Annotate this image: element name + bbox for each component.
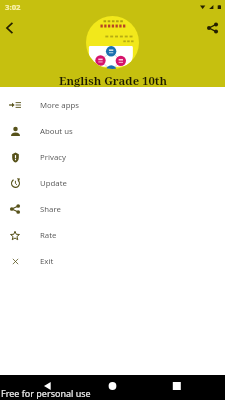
staticText: About us <box>40 126 73 137</box>
staticText: Share <box>40 204 61 215</box>
staticText: More apps <box>40 100 79 111</box>
button[interactable]: More apps <box>0 92 225 118</box>
button[interactable]: Privacy <box>0 144 225 170</box>
staticText: Rate <box>40 230 57 241</box>
button[interactable]: About us <box>0 118 225 144</box>
staticText: Free for personal use <box>1 387 91 399</box>
button[interactable]: Share <box>0 196 225 222</box>
staticText: Exit <box>40 256 54 267</box>
staticText: English Grade 10th <box>59 73 167 88</box>
staticText: 3:02 <box>5 2 21 13</box>
button[interactable]: Rate <box>0 222 225 248</box>
staticText: Privacy <box>40 152 67 163</box>
button[interactable]: Back <box>0 16 21 40</box>
staticText: Update <box>40 178 67 189</box>
button[interactable]: Update <box>0 170 225 196</box>
button[interactable]: Share <box>200 16 224 40</box>
button[interactable]: Exit <box>0 248 225 274</box>
